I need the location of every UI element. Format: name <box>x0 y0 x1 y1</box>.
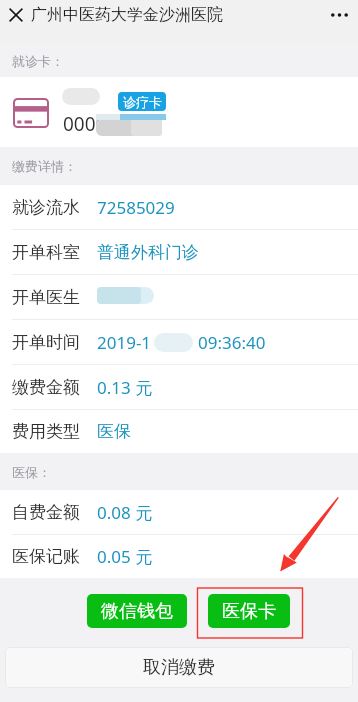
staticText: 微信钱包 <box>101 600 173 623</box>
staticText: 开单科室 <box>12 242 80 263</box>
staticText: 72585029 <box>97 196 175 219</box>
staticText: 医保记账 <box>12 546 80 567</box>
staticText: 2019-1 <box>97 331 152 354</box>
button[interactable]: 医保卡 <box>208 594 290 628</box>
staticText: 缴费金额 <box>12 377 80 398</box>
staticText: 就诊流水 <box>12 197 80 218</box>
staticText: 0.08 元 <box>97 501 153 524</box>
button[interactable]: 诊疗卡 <box>118 92 166 111</box>
staticText: 就诊卡： <box>12 53 64 69</box>
staticText: 开单时间 <box>12 332 80 353</box>
staticText: 取消缴费 <box>143 656 215 679</box>
button[interactable]: Close <box>0 0 31 29</box>
staticText: 09:36:40 <box>198 331 266 354</box>
button[interactable]: 取消缴费 <box>5 647 353 688</box>
button[interactable]: 微信钱包 <box>87 594 187 628</box>
staticText: 医保卡 <box>222 600 276 623</box>
staticText: 广州中医药大学金沙洲医院 <box>31 5 223 25</box>
staticText: 费用类型 <box>12 421 80 442</box>
staticText: 缴费详情： <box>12 158 77 174</box>
staticText: 0.05 元 <box>97 545 153 568</box>
staticText: 普通外科门诊 <box>97 242 199 263</box>
staticText: 医保： <box>12 464 51 480</box>
staticText: 0.13 元 <box>97 376 153 399</box>
staticText: 医保 <box>97 421 131 442</box>
staticText: 自费金额 <box>12 502 80 523</box>
button[interactable]: More options <box>320 0 358 29</box>
staticText: 开单医生 <box>12 287 80 308</box>
staticText: 诊疗卡 <box>123 94 162 110</box>
staticText: 00000 <box>63 111 118 137</box>
